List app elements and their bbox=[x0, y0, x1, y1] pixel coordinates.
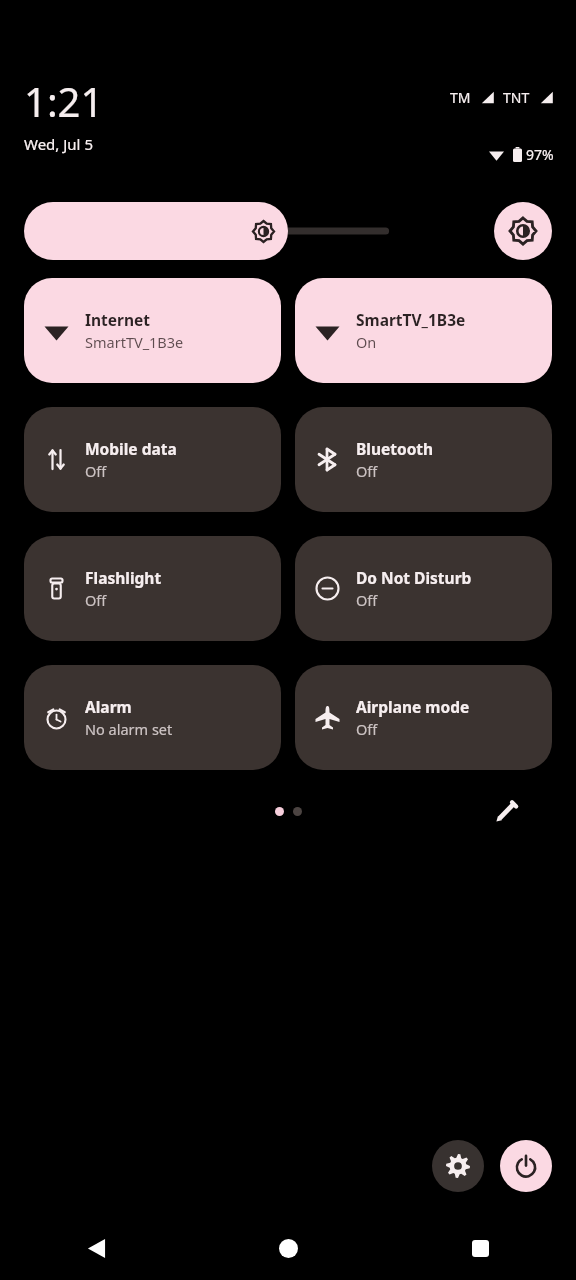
button[interactable]: Edit tiles bbox=[486, 791, 526, 831]
staticText: Off bbox=[85, 461, 107, 481]
staticText: On bbox=[356, 332, 377, 352]
button[interactable]: Home bbox=[192, 1216, 384, 1280]
staticText: 97% bbox=[526, 145, 554, 164]
staticText: Airplane mode bbox=[356, 696, 470, 717]
button[interactable]: Flashlight bbox=[24, 536, 281, 641]
button[interactable]: Power bbox=[500, 1140, 552, 1192]
staticText: SmartTV_1B3e bbox=[356, 309, 466, 330]
button[interactable]: Settings bbox=[432, 1140, 484, 1192]
staticText: Mobile data bbox=[85, 438, 177, 459]
staticText: TM bbox=[450, 88, 471, 107]
staticText: Off bbox=[356, 461, 378, 481]
staticText: Internet bbox=[85, 309, 151, 330]
button[interactable]: Internet bbox=[24, 278, 281, 383]
staticText: Flashlight bbox=[85, 567, 162, 588]
staticText: SmartTV_1B3e bbox=[85, 332, 184, 352]
button[interactable]: Mobile data bbox=[24, 407, 281, 512]
button[interactable]: Recents bbox=[384, 1216, 576, 1280]
staticText: Do Not Disturb bbox=[356, 567, 472, 588]
button[interactable]: Do Not Disturb bbox=[295, 536, 552, 641]
button[interactable]: Bluetooth bbox=[295, 407, 552, 512]
button[interactable] bbox=[24, 202, 476, 260]
staticText: Wed, Jul 5 bbox=[24, 134, 93, 154]
staticText: Off bbox=[356, 719, 378, 739]
staticText: 1:21 bbox=[24, 74, 104, 128]
staticText: No alarm set bbox=[85, 719, 173, 739]
button[interactable]: Alarm bbox=[24, 665, 281, 770]
staticText: Off bbox=[85, 590, 107, 610]
button[interactable]: Airplane mode bbox=[295, 665, 552, 770]
staticText: Off bbox=[356, 590, 378, 610]
staticText: Alarm bbox=[85, 696, 132, 717]
staticText: TNT bbox=[503, 88, 530, 107]
button[interactable]: Auto brightness bbox=[494, 202, 552, 260]
staticText: Bluetooth bbox=[356, 438, 434, 459]
button[interactable]: Back bbox=[0, 1216, 192, 1280]
button[interactable]: SmartTV_1B3e bbox=[295, 278, 552, 383]
